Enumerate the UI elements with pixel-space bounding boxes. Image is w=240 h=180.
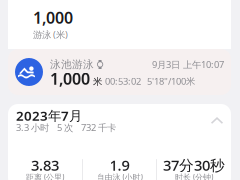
staticText: 自由泳 (小时) — [96, 172, 142, 180]
button[interactable]: 收起 — [211, 109, 223, 124]
staticText: 距离 (公里) — [26, 172, 64, 180]
staticText: 3.83 — [31, 155, 59, 175]
staticText: 3.3 小时 5 次 732 千卡 — [16, 121, 116, 134]
button[interactable]: 泳池游泳 — [8, 49, 231, 95]
staticText: 泳池游泳 — [50, 58, 94, 71]
staticText: 时长 (分钟) — [175, 172, 213, 180]
staticText: 9月3日 上午10:07 — [152, 58, 224, 71]
staticText: 5'18"/100米 — [147, 75, 195, 87]
staticText: 00:53:02 — [105, 75, 141, 87]
staticText: 1,000 — [33, 7, 73, 28]
staticText: 2023年7月 — [16, 107, 82, 124]
staticText: 1,000 — [50, 68, 90, 89]
staticText: 37分30秒 — [163, 155, 225, 175]
staticText: 游泳 (米) — [33, 28, 68, 41]
staticText: 1.9 — [109, 155, 129, 175]
staticText: 米 — [93, 76, 102, 87]
